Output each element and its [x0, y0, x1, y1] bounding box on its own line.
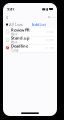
staticText: Work [11, 41, 17, 44]
staticText: Review PR [11, 27, 30, 33]
button[interactable]: Review PR [3, 28, 57, 36]
staticText: Today [11, 49, 18, 52]
staticText: ⋯ [50, 14, 55, 20]
staticText: ▮▮▮ [42, 7, 45, 10]
staticText: ‹ [6, 13, 8, 21]
staticText: Deadline [11, 43, 28, 49]
button[interactable]: Add List [31, 22, 45, 27]
staticText: 9:41 [7, 6, 14, 12]
staticText: 17:00 [45, 46, 54, 49]
button[interactable]: Deadline [3, 44, 57, 52]
button[interactable]: Stand-up [3, 36, 57, 44]
staticText: Work [11, 33, 17, 36]
staticText: ◖ [46, 7, 48, 11]
staticText: 9:00 [47, 30, 54, 33]
button[interactable]: More [51, 14, 55, 20]
staticText: 10:30 [45, 38, 54, 41]
staticText: ⌕ [47, 14, 50, 20]
button[interactable]: Search [47, 14, 51, 20]
staticText: Add List [31, 22, 45, 27]
button[interactable]: Back [5, 14, 9, 20]
staticText: Stand-up [11, 35, 30, 41]
staticText: All Lists [9, 22, 23, 27]
